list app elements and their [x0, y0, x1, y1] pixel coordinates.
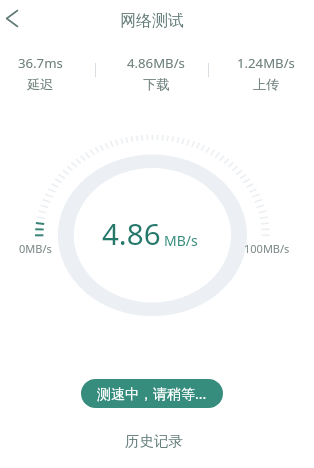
- staticText: 历史记录: [125, 432, 183, 450]
- staticText: 网络测试: [120, 11, 184, 31]
- staticText: 4.86MB/s: [127, 54, 185, 72]
- button[interactable]: 1.24MB/s: [237, 54, 295, 93]
- staticText: 延迟: [27, 76, 54, 93]
- button[interactable]: 测速中，请稍等...: [81, 379, 223, 408]
- staticText: 上传: [253, 76, 280, 93]
- staticText: MB/s: [164, 231, 198, 250]
- staticText: 36.7ms: [18, 54, 63, 72]
- staticText: 4.86: [102, 213, 161, 253]
- staticText: 1.24MB/s: [237, 54, 295, 72]
- staticText: 100MB/s: [244, 241, 290, 256]
- button[interactable]: 4.86MB/s: [127, 54, 185, 93]
- staticText: 测速中，请稍等...: [97, 384, 207, 403]
- button[interactable]: 历史记录: [115, 429, 193, 453]
- staticText: 0MB/s: [19, 241, 52, 256]
- button[interactable]: 36.7ms: [18, 54, 63, 93]
- button[interactable]: Back: [0, 6, 26, 32]
- staticText: 下载: [143, 76, 170, 93]
